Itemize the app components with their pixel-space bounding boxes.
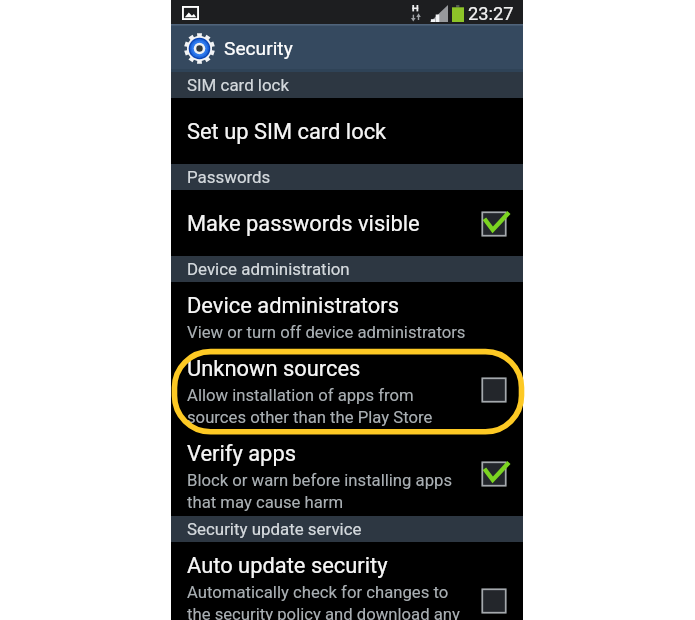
staticText: Security update service (187, 519, 362, 539)
staticText: SIM card lock (187, 75, 290, 95)
staticText: Allow installation of apps from sources … (187, 386, 433, 427)
staticText: View or turn off device administrators (187, 323, 466, 343)
button[interactable]: Auto update security (171, 542, 523, 620)
staticText: Passwords (187, 167, 271, 187)
staticText: Unknown sources (187, 356, 361, 382)
staticText: Auto update security (187, 553, 388, 579)
button[interactable]: Set up SIM card lock (171, 98, 523, 164)
staticText: Block or warn before installing apps tha… (187, 471, 453, 512)
staticText: Security (224, 37, 293, 60)
staticText: Set up SIM card lock (187, 119, 387, 145)
staticText: Device administrators (187, 293, 399, 319)
other: Screenshot captured (182, 6, 199, 20)
button[interactable]: Unknown sources (171, 351, 523, 432)
button[interactable]: Make passwords visible (171, 190, 523, 256)
staticText: Automatically check for changes to the s… (187, 583, 460, 620)
staticText: 23:27 (468, 3, 514, 24)
staticText: Device administration (187, 259, 350, 279)
button[interactable]: Device administrators (171, 282, 523, 351)
button[interactable]: Security (171, 24, 523, 72)
staticText: Verify apps (187, 441, 297, 467)
staticText: Make passwords visible (187, 211, 420, 237)
button[interactable]: Verify apps (171, 432, 523, 516)
